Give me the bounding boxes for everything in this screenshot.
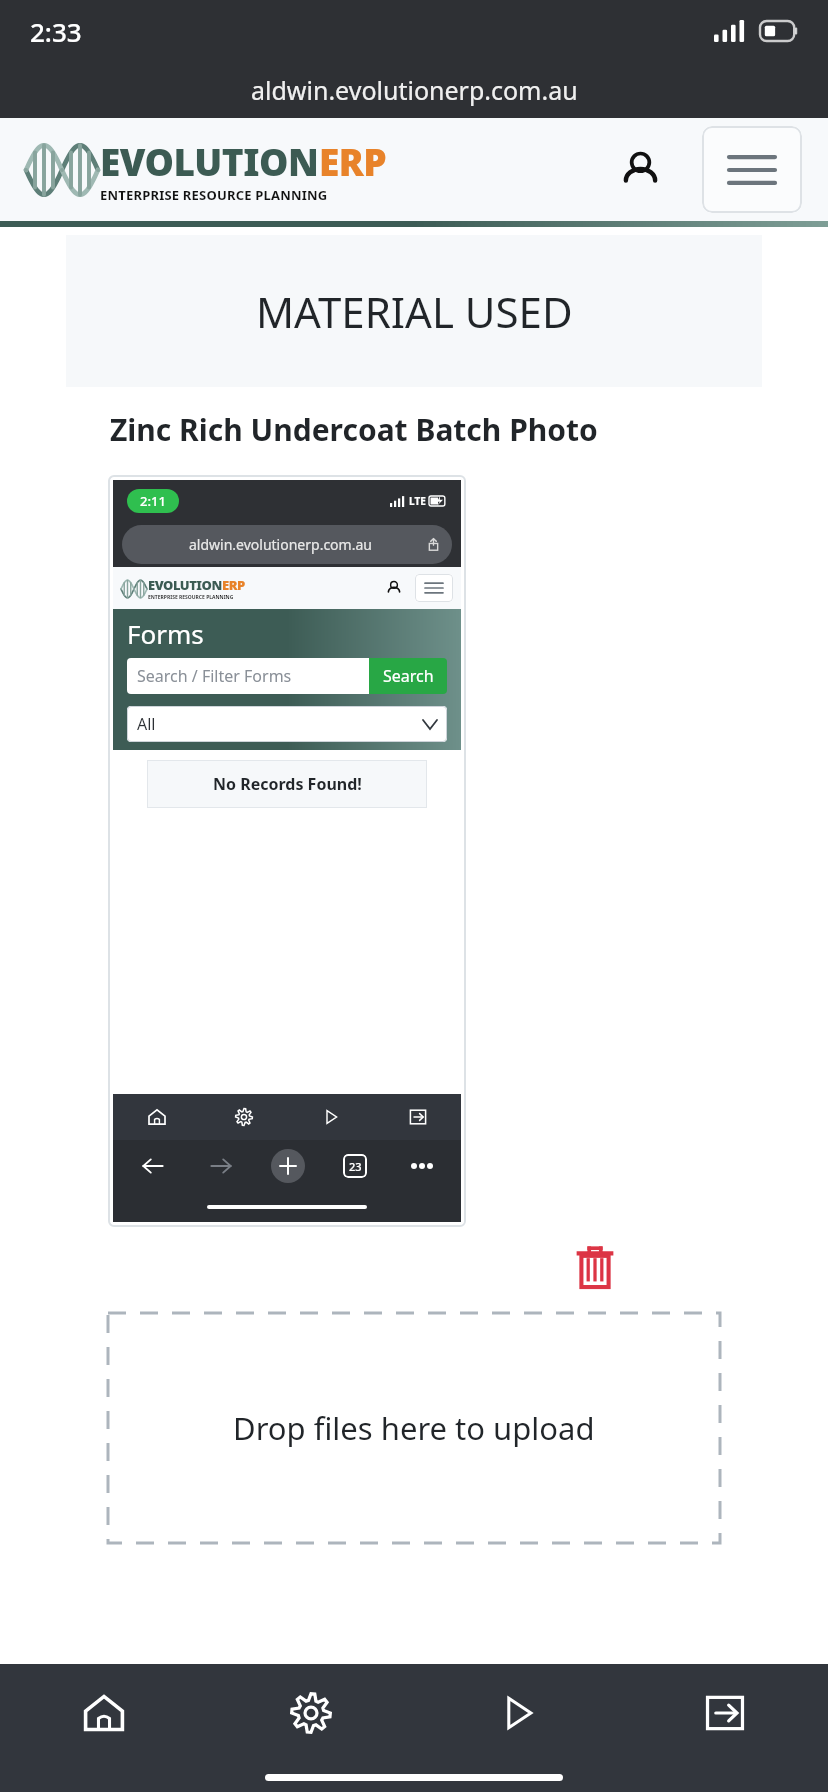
staticText: ENTERPRISE RESOURCE PLANNING (100, 186, 328, 204)
staticText: aldwin.evolutionerp.com.au (189, 535, 372, 554)
staticText: 2:33 (30, 14, 82, 49)
staticText: All (137, 713, 156, 735)
button[interactable]: Menu (702, 126, 802, 213)
button[interactable]: Account (604, 134, 676, 206)
staticText: ERP (319, 136, 387, 186)
staticText: 2:11 (140, 492, 166, 510)
button[interactable]: Logout (621, 1664, 828, 1762)
staticText: LTE (409, 494, 426, 508)
button[interactable]: Delete (567, 1239, 623, 1295)
staticText: aldwin.evolutionerp.com.au (251, 73, 578, 107)
button[interactable]: EVOLUTION (26, 135, 426, 205)
staticText: Search (383, 665, 434, 687)
staticText: 23 (349, 1159, 362, 1174)
button[interactable]: Drop files here to upload (108, 1313, 720, 1543)
button[interactable]: Play (414, 1664, 621, 1762)
staticText: Search / Filter Forms (137, 665, 292, 687)
staticText: No Records Found! (213, 773, 362, 795)
staticText: Zinc Rich Undercoat Batch Photo (110, 409, 598, 450)
staticText: MATERIAL USED (256, 283, 573, 340)
staticText: ENTERPRISE RESOURCE PLANNING (148, 594, 234, 601)
staticText: ERP (222, 576, 245, 594)
button[interactable]: All (127, 706, 447, 742)
button[interactable]: Home (0, 1664, 207, 1762)
staticText: Forms (127, 616, 204, 651)
button[interactable]: Search (369, 658, 447, 694)
staticText: EVOLUTION (148, 576, 222, 594)
staticText: EVOLUTION (100, 136, 319, 186)
button[interactable]: Settings (207, 1664, 414, 1762)
button[interactable]: Batch photo attachment (108, 475, 466, 1227)
staticText: Drop files here to upload (233, 1407, 595, 1449)
